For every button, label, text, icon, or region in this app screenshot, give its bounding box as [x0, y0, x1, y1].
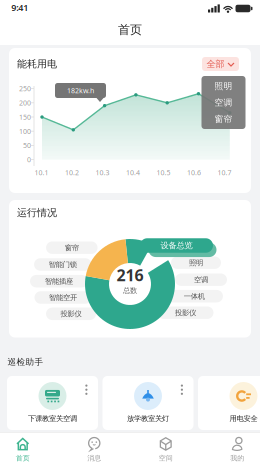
button[interactable]: 放学教室关灯	[102, 376, 193, 430]
staticText: 10.2	[65, 168, 79, 177]
button[interactable]: 全部	[202, 57, 239, 71]
staticText: 智能插座	[45, 277, 73, 286]
button[interactable]: 设备总览	[140, 238, 213, 253]
staticText: 照明	[189, 258, 203, 267]
staticText: 投影仪	[175, 308, 196, 317]
staticText: 150	[19, 112, 31, 122]
button[interactable]: 下课教室关空调	[7, 376, 98, 430]
staticText: 200	[19, 98, 31, 107]
staticText: 窗帘	[214, 114, 232, 124]
staticText: 智能空开	[49, 293, 77, 302]
staticText: 10.3	[95, 168, 109, 177]
staticText: 运行情况	[17, 206, 57, 219]
staticText: 250	[19, 84, 31, 93]
staticText: 216	[116, 264, 143, 286]
staticText: 巡检助手	[7, 357, 43, 367]
staticText: 智能门锁	[49, 260, 77, 269]
staticText: 下课教室关空调	[28, 414, 77, 423]
staticText: 首页	[16, 454, 30, 463]
button[interactable]: 消息	[72, 435, 116, 465]
button[interactable]: 首页	[1, 435, 45, 465]
staticText: 消息	[87, 454, 101, 463]
staticText: 设备总览	[160, 240, 192, 251]
staticText: 100	[19, 127, 31, 136]
staticText: 9:41	[11, 1, 28, 13]
button[interactable]: 空调	[201, 94, 245, 110]
staticText: 放学教室关灯	[127, 414, 169, 423]
staticText: 总数	[123, 286, 137, 295]
staticText: 10.5	[156, 168, 170, 177]
button[interactable]: 我的	[215, 435, 259, 465]
button[interactable]: 用电安全	[198, 376, 260, 430]
staticText: 能耗用电	[17, 58, 57, 70]
staticText: 182kw.h	[67, 86, 94, 95]
staticText: 投影仪	[60, 309, 81, 318]
staticText: 0	[27, 155, 31, 164]
staticText: 照明	[214, 81, 232, 91]
staticText: 10.6	[187, 168, 201, 177]
staticText: 全部	[206, 58, 224, 70]
staticText: 空调	[194, 275, 208, 284]
staticText: 空调	[214, 97, 232, 108]
button[interactable]: 更多选项	[80, 383, 92, 397]
staticText: 首页	[118, 22, 142, 37]
button[interactable]: 空间	[144, 435, 188, 465]
staticText: 一体机	[184, 292, 205, 301]
staticText: 10.1	[34, 168, 48, 177]
staticText: 50	[23, 141, 31, 150]
staticText: 我的	[230, 454, 244, 463]
staticText: 10.4	[126, 168, 140, 177]
button[interactable]: 更多选项	[176, 383, 188, 397]
staticText: 窗帘	[65, 243, 79, 252]
staticText: 用电安全	[229, 414, 257, 423]
staticText: 空间	[159, 454, 173, 463]
button[interactable]: 照明	[201, 78, 245, 94]
button[interactable]: 窗帘	[201, 111, 245, 127]
staticText: 10.7	[217, 168, 231, 177]
